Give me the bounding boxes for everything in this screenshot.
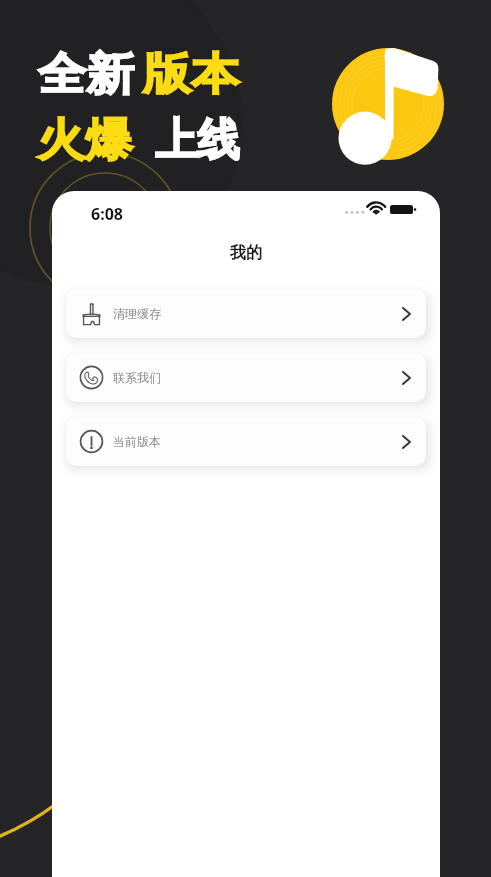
staticText: 6:08 <box>91 203 123 225</box>
staticText: 版本 <box>143 47 239 102</box>
staticText: 上线 <box>155 113 239 168</box>
staticText: 当前版本 <box>113 434 161 449</box>
staticText: 我的 <box>230 243 262 263</box>
button[interactable]: 当前版本 <box>66 417 426 466</box>
staticText: 清理缓存 <box>113 306 161 321</box>
button[interactable]: 联系我们 <box>66 353 426 402</box>
staticText: 联系我们 <box>113 370 161 385</box>
staticText: 全新 <box>38 47 134 102</box>
button[interactable]: 清理缓存 <box>66 289 426 338</box>
staticText: 火爆 <box>37 113 133 168</box>
